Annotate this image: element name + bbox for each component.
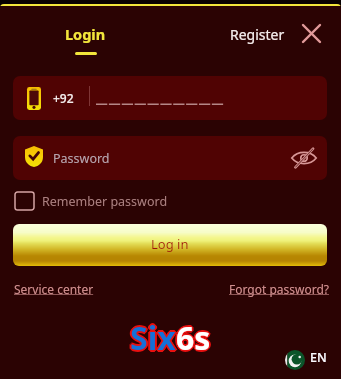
staticText: 6s xyxy=(175,317,210,361)
staticText: Six xyxy=(130,318,176,362)
button[interactable]: +92 xyxy=(13,76,327,120)
button[interactable]: EN xyxy=(282,347,330,373)
button[interactable]: Service center xyxy=(11,279,97,299)
staticText: 6s xyxy=(176,314,211,358)
staticText: 6s xyxy=(177,315,212,359)
staticText: Service center xyxy=(14,281,94,297)
staticText: Log in xyxy=(151,235,189,253)
staticText: Password xyxy=(53,150,110,167)
staticText: +92 xyxy=(53,90,74,106)
staticText: 6s xyxy=(177,317,212,361)
staticText: Six xyxy=(129,317,175,361)
staticText: Six xyxy=(132,316,178,360)
staticText: 6s xyxy=(178,316,213,360)
staticText: Six xyxy=(129,315,175,359)
button[interactable]: Login xyxy=(59,20,112,59)
staticText: Forgot password? xyxy=(229,281,330,297)
staticText: Six xyxy=(128,316,174,360)
button[interactable]: Register xyxy=(224,21,291,48)
staticText: 6s xyxy=(176,316,211,360)
button[interactable]: Password xyxy=(13,136,327,180)
staticText: Register xyxy=(230,25,285,44)
button[interactable]: Show password xyxy=(291,145,317,171)
staticText: 6s xyxy=(175,315,210,359)
button[interactable]: Forgot password? xyxy=(226,279,333,299)
staticText: Six xyxy=(131,315,177,359)
staticText: Six xyxy=(130,316,176,360)
staticText: 6s xyxy=(176,318,211,362)
staticText: 6s xyxy=(174,316,209,360)
button[interactable]: Log in xyxy=(13,224,327,266)
staticText: EN xyxy=(310,349,327,366)
staticText: Six xyxy=(131,317,177,361)
button[interactable]: Close xyxy=(302,24,321,43)
staticText: Login xyxy=(65,24,106,44)
staticText: Remember password xyxy=(42,193,168,210)
staticText: Six xyxy=(130,314,176,358)
button[interactable]: Remember password xyxy=(12,189,171,213)
